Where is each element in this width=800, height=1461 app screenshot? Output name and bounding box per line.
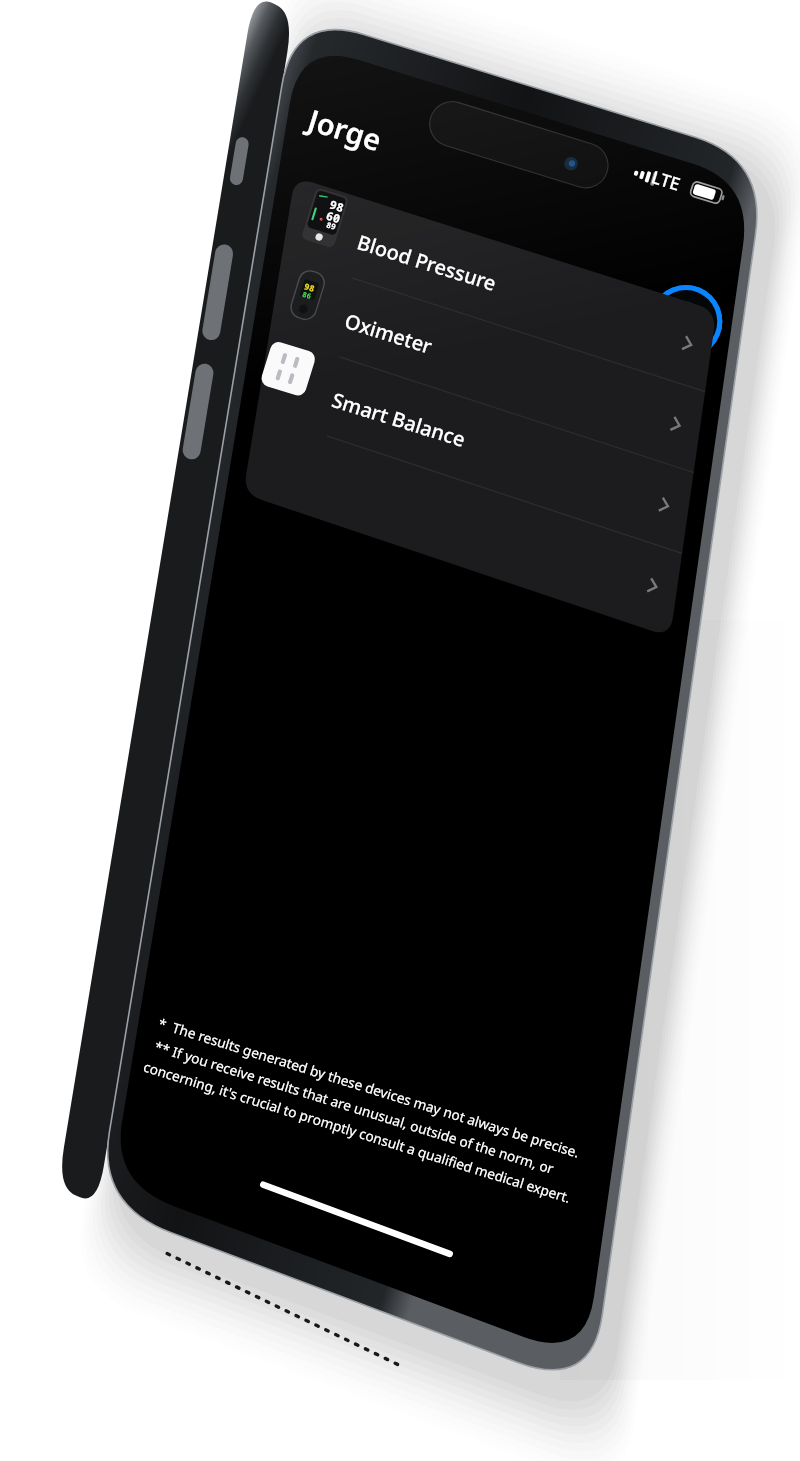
button[interactable]: Health devices screen [0,0,800,1461]
